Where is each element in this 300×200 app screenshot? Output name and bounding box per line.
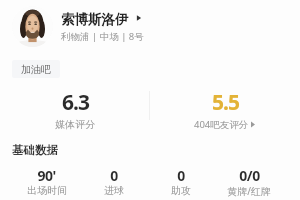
staticText: 0/0 bbox=[239, 166, 260, 185]
staticText: 90' bbox=[37, 166, 56, 185]
staticText: 加油吧 bbox=[21, 63, 51, 76]
staticText: 基础数据 bbox=[12, 143, 58, 157]
button[interactable]: 索博斯洛伊 bbox=[61, 11, 129, 28]
button[interactable]: 5.5 bbox=[150, 88, 300, 131]
staticText: 黄牌/红牌 bbox=[227, 184, 271, 198]
staticText: 媒体评分 bbox=[55, 118, 95, 131]
staticText: 进球 bbox=[104, 184, 124, 197]
staticText: 索博斯洛伊 bbox=[61, 11, 129, 28]
button[interactable]: 6.3 bbox=[0, 88, 150, 131]
button[interactable]: 加油吧 bbox=[12, 60, 60, 78]
button[interactable]: 0 bbox=[80, 166, 147, 198]
staticText: 404吧友评分 bbox=[194, 118, 249, 131]
staticText: 助攻 bbox=[171, 184, 191, 197]
button[interactable]: 0 bbox=[147, 166, 215, 198]
staticText: 出场时间 bbox=[27, 184, 67, 197]
staticText: 5.5 bbox=[212, 88, 239, 117]
button[interactable]: 90' bbox=[13, 166, 80, 198]
button[interactable]: Player photo bbox=[12, 6, 53, 47]
staticText: 6.3 bbox=[62, 88, 89, 117]
staticText: 0 bbox=[110, 166, 118, 185]
staticText: 0 bbox=[177, 166, 185, 185]
button[interactable]: 0/0 bbox=[215, 166, 283, 199]
staticText: 利物浦 | 中场 | 8号 bbox=[61, 30, 144, 43]
